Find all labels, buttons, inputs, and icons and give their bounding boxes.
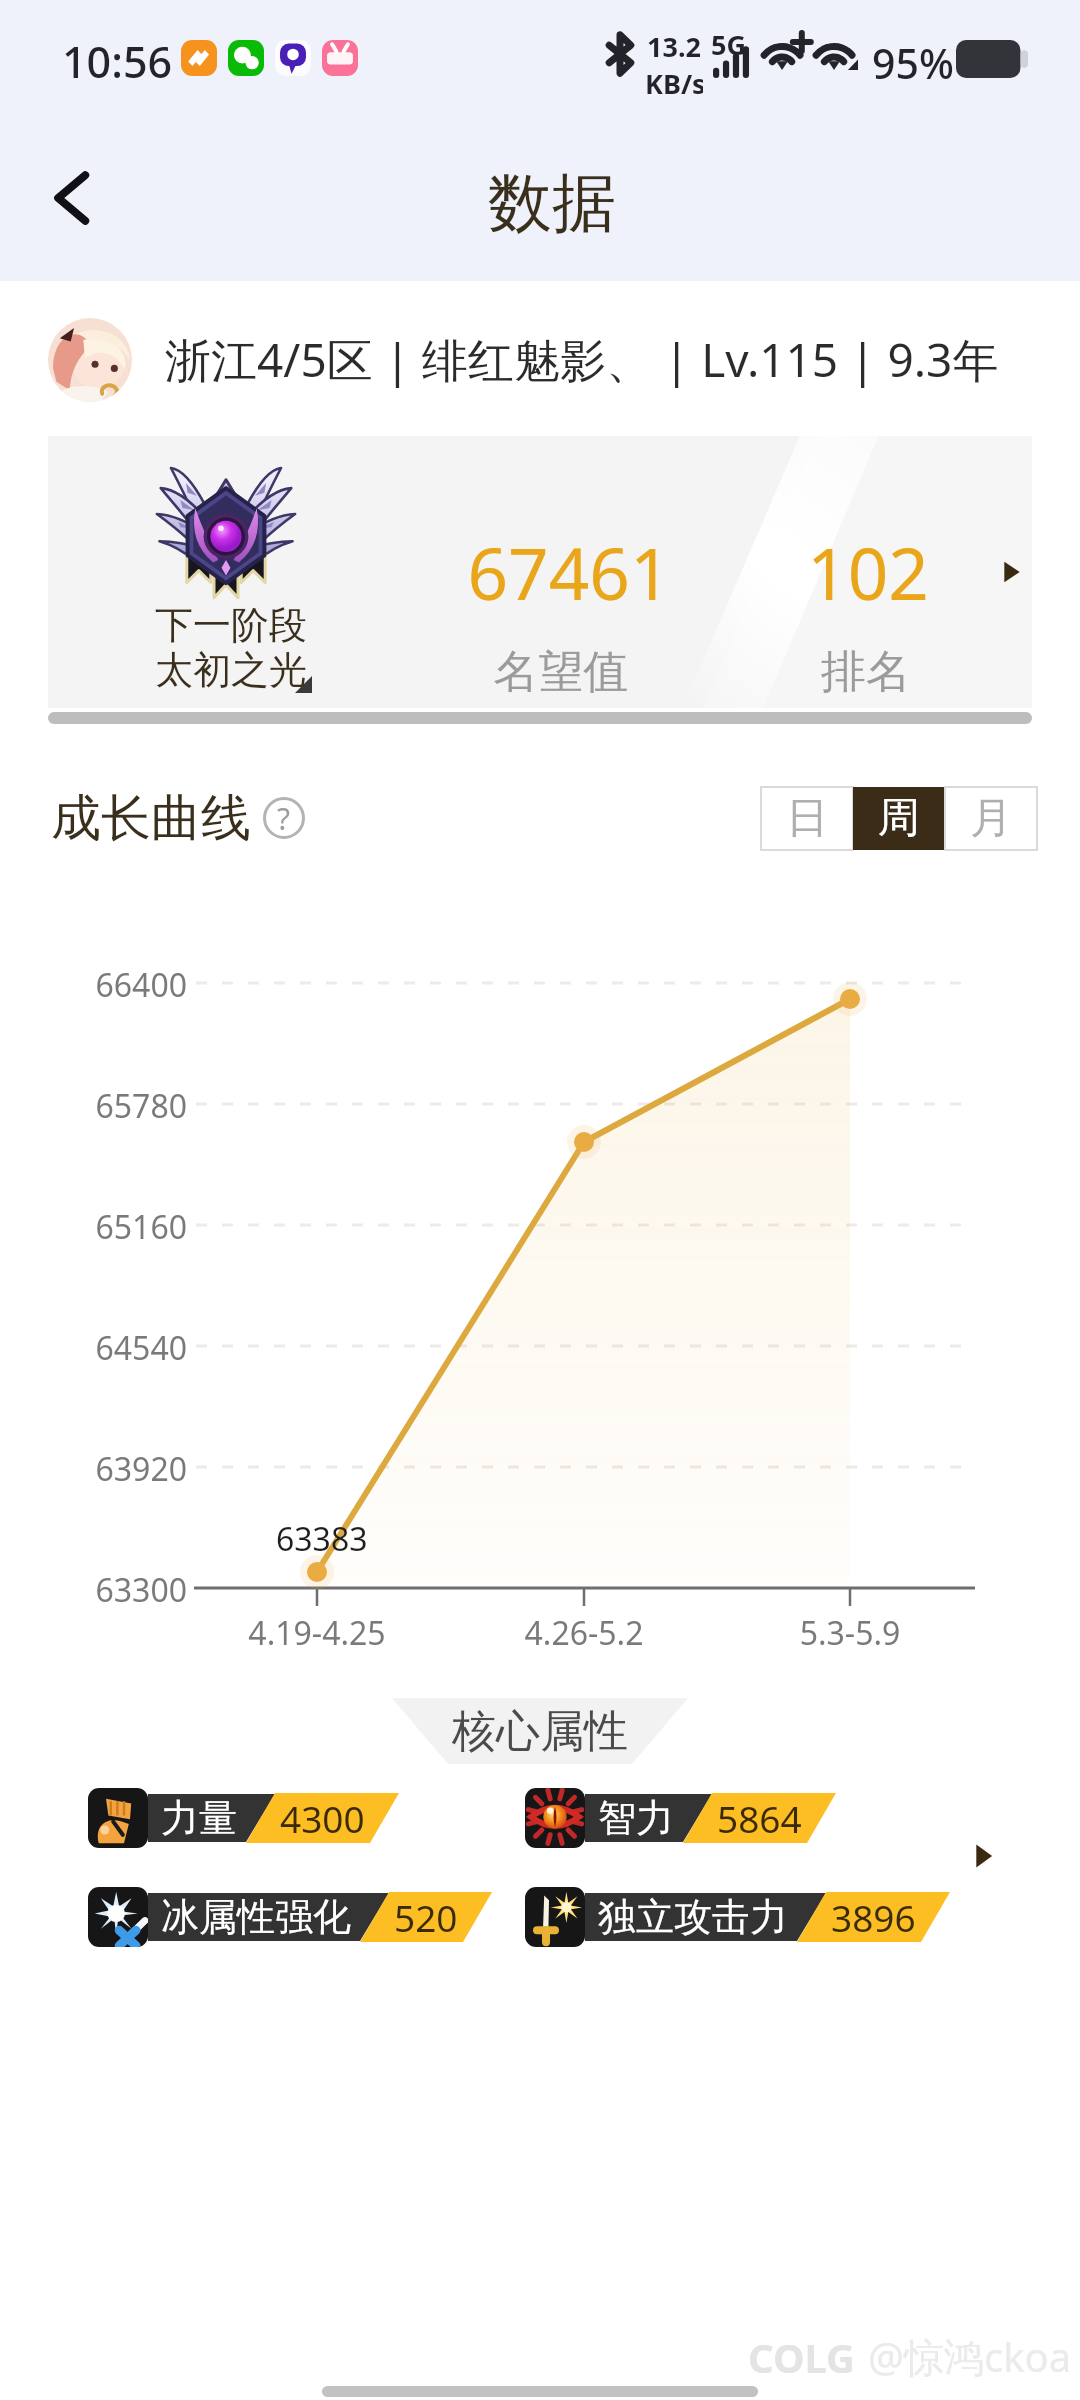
staticText: 冰属性强化	[161, 1893, 351, 1941]
staticText: 520	[394, 1892, 458, 1942]
button[interactable]: Back	[38, 158, 118, 238]
staticText: 成长曲线	[51, 787, 251, 850]
staticText: 64540	[0, 1326, 187, 1370]
staticText: 浙江4/5区 | 绯红魅影、 | Lv.115 | 9.3年	[165, 328, 999, 391]
staticText: 65780	[0, 1084, 187, 1128]
staticText: 日	[786, 792, 828, 845]
button[interactable]: 力量	[88, 1788, 399, 1848]
button[interactable]: 浙江4/5区 | 绯红魅影、 | Lv.115 | 9.3年	[48, 318, 988, 402]
staticText: 名望值	[441, 644, 681, 701]
staticText: 5G	[711, 26, 746, 63]
button[interactable]: 日	[761, 787, 853, 850]
button[interactable]: 冰属性强化	[88, 1887, 492, 1947]
staticText: 102	[708, 524, 1028, 621]
staticText: 智力	[598, 1794, 674, 1842]
staticText: 5864	[717, 1793, 802, 1843]
staticText: 核心属性	[452, 1704, 628, 1759]
staticText: 63300	[0, 1568, 187, 1612]
button[interactable]: 智力	[525, 1788, 836, 1848]
staticText: 周	[878, 792, 920, 845]
staticText: 10:56	[62, 32, 173, 91]
button[interactable]: 下一阶段	[48, 436, 1032, 708]
staticText: ?	[277, 798, 291, 839]
button[interactable]: Help	[263, 797, 305, 839]
staticText: 4.19-4.25	[197, 1611, 437, 1655]
staticText: 月	[970, 792, 1012, 845]
staticText: 4.26-5.2	[464, 1611, 704, 1655]
staticText: COLG	[748, 2330, 856, 2384]
staticText: 63383	[276, 1517, 368, 1561]
staticText: 13.2	[647, 28, 701, 65]
button[interactable]: 月	[945, 787, 1037, 850]
button[interactable]: 独立攻击力	[525, 1887, 950, 1947]
staticText: 数据	[488, 163, 616, 244]
staticText: @惊鸿ckoa	[868, 2329, 1072, 2384]
staticText: 5.3-5.9	[730, 1611, 970, 1655]
staticText: 独立攻击力	[598, 1893, 788, 1941]
staticText: 太初之光	[131, 646, 331, 694]
staticText: 65160	[0, 1205, 187, 1249]
staticText: 95%	[872, 35, 954, 91]
button[interactable]: More attributes	[956, 1824, 1012, 1888]
staticText: 下一阶段	[131, 601, 331, 649]
staticText: 3896	[831, 1892, 916, 1942]
staticText: 66400	[0, 963, 187, 1007]
staticText: KB/s	[645, 65, 703, 102]
staticText: 力量	[161, 1794, 237, 1842]
staticText: 63920	[0, 1447, 187, 1491]
staticText: 67461	[409, 524, 729, 621]
staticText: 4300	[280, 1793, 365, 1843]
button[interactable]: 周	[853, 787, 945, 850]
staticText: 排名	[746, 644, 986, 701]
